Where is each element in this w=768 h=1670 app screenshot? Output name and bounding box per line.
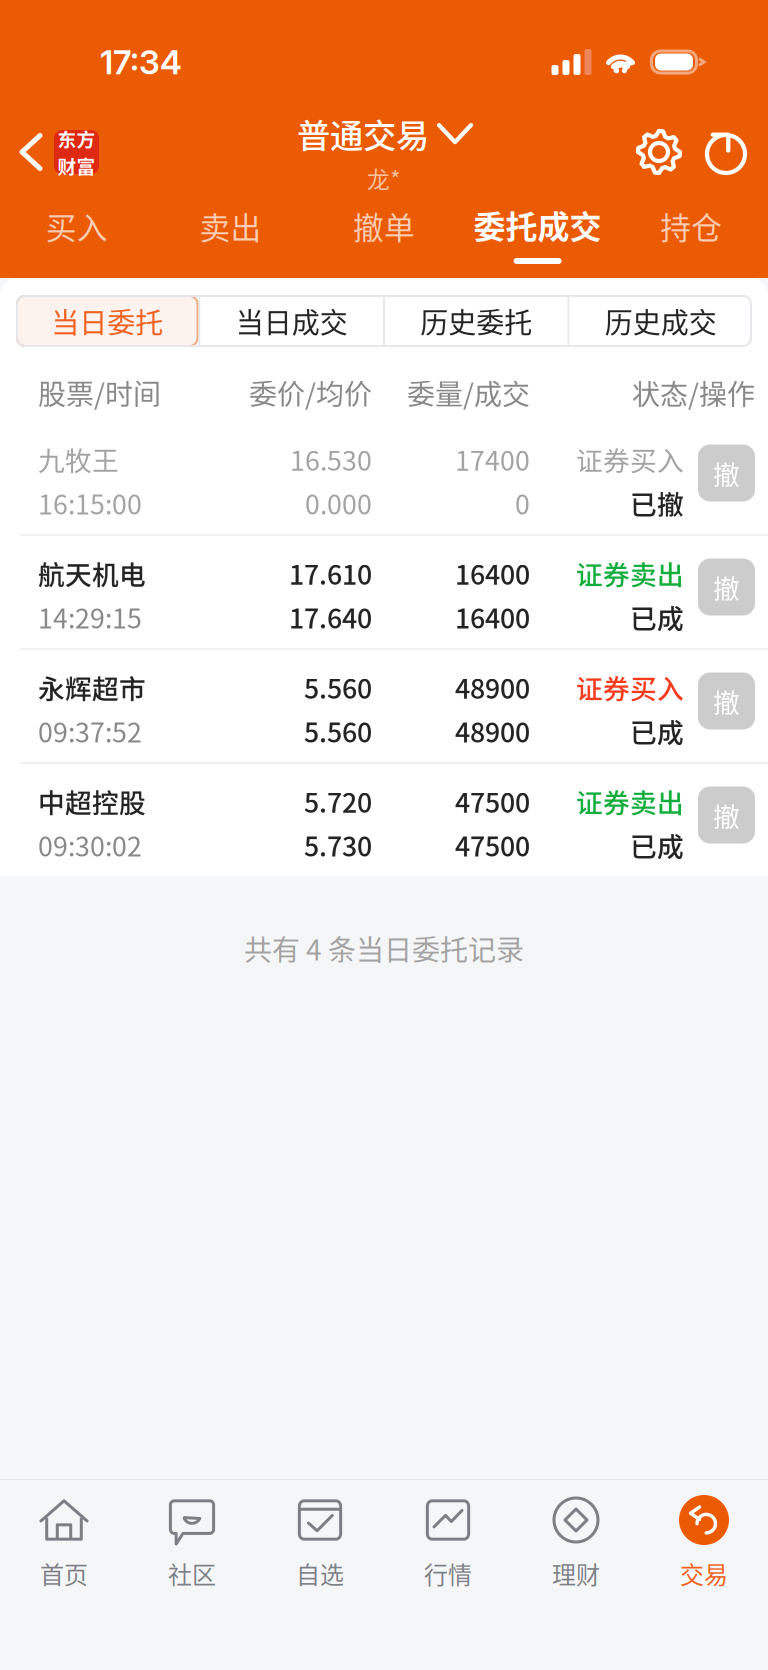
- staticText: 历史委托: [420, 301, 532, 341]
- button[interactable]: 永辉超市: [0, 650, 768, 762]
- button[interactable]: 首页: [0, 1480, 128, 1600]
- staticText: 当日成交: [236, 301, 348, 341]
- staticText: 5.560: [304, 711, 372, 750]
- staticText: 当日委托: [51, 301, 163, 341]
- button[interactable]: 卖出: [154, 192, 307, 272]
- staticText: 卖出: [199, 204, 261, 248]
- button[interactable]: 刷新: [701, 121, 751, 183]
- staticText: 5.720: [304, 782, 372, 820]
- button[interactable]: 社区: [128, 1480, 256, 1600]
- button[interactable]: 撤单: [698, 672, 755, 729]
- staticText: 社区: [168, 1556, 216, 1591]
- staticText: 交易: [680, 1556, 728, 1591]
- button[interactable]: 当日成交: [200, 295, 383, 347]
- staticText: 行情: [424, 1556, 472, 1591]
- staticText: 股票/时间: [38, 372, 161, 413]
- staticText: 47500: [455, 782, 530, 820]
- staticText: 首页: [40, 1556, 88, 1591]
- staticText: 航天机电: [38, 554, 146, 592]
- staticText: 48900: [455, 668, 530, 706]
- staticText: 47500: [455, 825, 530, 864]
- staticText: 东方: [57, 125, 95, 152]
- staticText: 撤: [713, 454, 740, 492]
- staticText: 09:30:02: [38, 825, 142, 864]
- button[interactable]: 持仓: [614, 192, 768, 272]
- button[interactable]: 交易: [640, 1480, 768, 1600]
- staticText: 48900: [455, 711, 530, 750]
- staticText: 5.560: [304, 668, 372, 706]
- staticText: 委价/均价: [249, 372, 372, 413]
- button[interactable]: 撤单: [698, 444, 755, 501]
- button[interactable]: 撤单: [698, 558, 755, 615]
- staticText: 17.610: [289, 554, 372, 592]
- staticText: 证券卖出: [576, 554, 684, 592]
- staticText: 已成: [630, 711, 684, 750]
- staticText: 14:29:15: [38, 597, 142, 636]
- button[interactable]: 航天机电: [0, 536, 768, 648]
- staticText: 自选: [296, 1556, 344, 1591]
- staticText: 17:34: [100, 42, 182, 82]
- button[interactable]: 九牧王: [0, 422, 768, 534]
- staticText: 九牧王: [38, 440, 119, 478]
- staticText: 中超控股: [38, 782, 146, 820]
- staticText: 撤: [713, 796, 740, 834]
- staticText: 已撤: [630, 483, 684, 522]
- staticText: 已成: [630, 825, 684, 864]
- button[interactable]: 撤单: [307, 192, 461, 272]
- staticText: 16:15:00: [38, 483, 142, 522]
- button[interactable]: 返回 东方财富: [0, 110, 109, 194]
- staticText: 持仓: [660, 204, 722, 248]
- button[interactable]: 普通交易: [277, 103, 491, 201]
- staticText: 撤: [713, 682, 740, 720]
- button[interactable]: 理财: [512, 1480, 640, 1600]
- staticText: 证券买入: [576, 440, 684, 478]
- button[interactable]: 自选: [256, 1480, 384, 1600]
- button[interactable]: 设置: [631, 121, 687, 183]
- button[interactable]: 中超控股: [0, 764, 768, 876]
- staticText: 证券买入: [576, 668, 684, 706]
- staticText: 17400: [455, 440, 530, 478]
- button[interactable]: 撤单: [698, 786, 755, 843]
- staticText: 委托成交: [474, 202, 602, 248]
- staticText: 16400: [455, 554, 530, 592]
- staticText: 证券卖出: [576, 782, 684, 820]
- staticText: 状态/操作: [632, 372, 755, 413]
- staticText: 龙*: [367, 162, 401, 194]
- staticText: 0: [515, 483, 530, 522]
- staticText: 已成: [630, 597, 684, 636]
- staticText: 委量/成交: [407, 372, 530, 413]
- staticText: 撤单: [353, 204, 415, 248]
- staticText: 财富: [57, 152, 95, 179]
- button[interactable]: 行情: [384, 1480, 512, 1600]
- staticText: 历史成交: [605, 301, 717, 341]
- staticText: 0.000: [305, 483, 372, 522]
- staticText: 普通交易: [297, 109, 429, 158]
- staticText: 17.640: [289, 597, 372, 636]
- staticText: 5.730: [304, 825, 372, 864]
- staticText: 理财: [552, 1556, 600, 1591]
- staticText: 16400: [455, 597, 530, 636]
- staticText: 撤: [713, 568, 740, 606]
- staticText: 永辉超市: [38, 668, 146, 706]
- button[interactable]: 历史成交: [569, 295, 752, 347]
- staticText: 09:37:52: [38, 711, 142, 750]
- button[interactable]: 买入: [0, 192, 154, 272]
- button[interactable]: 当日委托: [16, 295, 198, 347]
- staticText: 共有 4 条当日委托记录: [244, 928, 524, 968]
- button[interactable]: 委托成交: [461, 192, 614, 272]
- staticText: 16.530: [290, 440, 372, 478]
- staticText: 买入: [46, 204, 108, 248]
- button[interactable]: 历史委托: [385, 295, 567, 347]
